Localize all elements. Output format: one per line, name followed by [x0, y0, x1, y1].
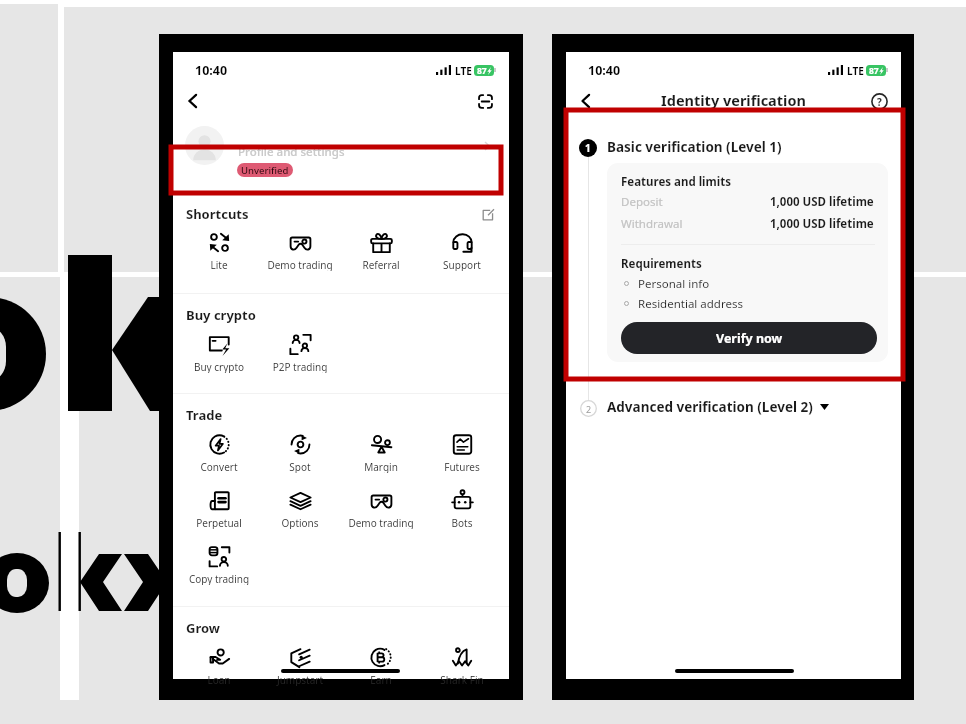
- button[interactable]: Perpetual: [179, 489, 259, 529]
- staticText: Profile and settings: [238, 144, 345, 160]
- button[interactable]: [173, 118, 509, 176]
- staticText: 10:40: [195, 62, 228, 79]
- button[interactable]: Referral: [341, 231, 421, 271]
- button[interactable]: Shark Fin: [422, 646, 502, 686]
- button[interactable]: Margin: [341, 433, 421, 473]
- staticText: Copy trading: [179, 572, 259, 585]
- staticText: 1,000 USD lifetime: [770, 216, 874, 232]
- staticText: LTE: [847, 64, 864, 76]
- button[interactable]: Earn: [341, 646, 421, 686]
- staticText: Spot: [260, 460, 340, 473]
- staticText: Basic verification (Level 1): [607, 138, 782, 156]
- button[interactable]: Edit shortcuts: [482, 209, 494, 221]
- button[interactable]: Buy crypto: [179, 333, 259, 373]
- staticText: Buy crypto: [179, 360, 259, 373]
- button[interactable]: Bots: [422, 489, 502, 529]
- staticText: LTE: [455, 64, 472, 76]
- staticText: ?: [877, 95, 882, 109]
- staticText: 10:40: [588, 62, 621, 79]
- staticText: Personal info: [638, 276, 710, 292]
- staticText: Earn: [341, 673, 421, 686]
- button[interactable]: Support: [422, 231, 502, 271]
- staticText: Bots: [422, 516, 502, 529]
- staticText: Features and limits: [621, 174, 731, 190]
- staticText: Residential address: [638, 296, 743, 312]
- staticText: Perpetual: [179, 516, 259, 529]
- button[interactable]: Back: [182, 90, 204, 112]
- button[interactable]: Spot: [260, 433, 340, 473]
- staticText: Jumpstart: [260, 673, 340, 686]
- staticText: Deposit: [621, 194, 663, 210]
- staticText: Loan: [179, 673, 259, 686]
- staticText: Shortcuts: [186, 205, 249, 223]
- button[interactable]: Advanced verification (Level 2): [607, 396, 829, 418]
- staticText: Demo trading: [341, 516, 421, 529]
- staticText: 2: [586, 403, 592, 415]
- staticText: Demo trading: [260, 258, 340, 271]
- staticText: 1: [585, 141, 591, 155]
- staticText: Unverified: [241, 164, 289, 177]
- button[interactable]: Back: [575, 90, 597, 112]
- staticText: Advanced verification (Level 2): [607, 398, 813, 416]
- button[interactable]: Jumpstart: [260, 646, 340, 686]
- button[interactable]: Lite: [179, 231, 259, 271]
- button[interactable]: Futures: [422, 433, 502, 473]
- staticText: Futures: [422, 460, 502, 473]
- staticText: Lite: [179, 258, 259, 271]
- staticText: Convert: [179, 460, 259, 473]
- button[interactable]: Demo trading: [341, 489, 421, 529]
- staticText: 87: [477, 65, 487, 76]
- button[interactable]: Help: [871, 93, 888, 110]
- button[interactable]: P2P trading: [260, 333, 340, 373]
- staticText: Verify now: [716, 330, 783, 347]
- staticText: Trade: [186, 406, 223, 424]
- staticText: P2P trading: [260, 360, 340, 373]
- staticText: Identity verification: [661, 90, 806, 110]
- staticText: Grow: [186, 619, 220, 637]
- staticText: Options: [260, 516, 340, 529]
- button[interactable]: Loan: [179, 646, 259, 686]
- staticText: Withdrawal: [621, 216, 683, 232]
- staticText: 87: [869, 65, 879, 76]
- button[interactable]: Convert: [179, 433, 259, 473]
- button[interactable]: Demo trading: [260, 231, 340, 271]
- button[interactable]: Scan QR code: [476, 92, 495, 111]
- staticText: Referral: [341, 258, 421, 271]
- button[interactable]: Verify now: [621, 322, 877, 354]
- staticText: 1,000 USD lifetime: [770, 194, 874, 210]
- staticText: Shark Fin: [422, 673, 502, 686]
- button[interactable]: Options: [260, 489, 340, 529]
- staticText: Support: [422, 258, 502, 271]
- staticText: Buy crypto: [186, 306, 256, 324]
- button[interactable]: Copy trading: [179, 545, 259, 585]
- staticText: Requirements: [621, 256, 702, 272]
- staticText: Margin: [341, 460, 421, 473]
